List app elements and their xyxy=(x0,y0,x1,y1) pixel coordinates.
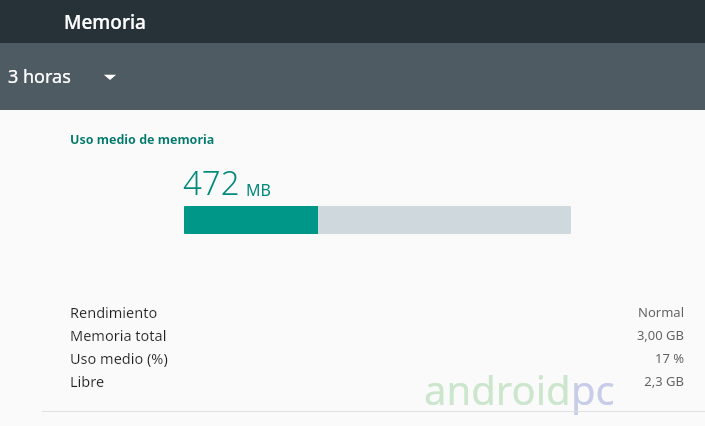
staticText: Memoria total xyxy=(70,325,167,345)
button[interactable]: Memoria total xyxy=(0,323,705,346)
button[interactable]: Rendimiento xyxy=(0,300,705,323)
staticText: Memoria xyxy=(64,9,146,35)
staticText: pc xyxy=(571,362,615,416)
staticText: 472 xyxy=(183,160,240,205)
staticText: 3,00 GB xyxy=(636,326,684,344)
staticText: Uso medio de memoria xyxy=(70,131,215,148)
staticText: Rendimiento xyxy=(70,302,158,322)
staticText: Uso medio (%) xyxy=(70,348,168,368)
button[interactable]: Libre xyxy=(0,369,705,392)
staticText: android xyxy=(424,362,571,416)
button[interactable]: 3 horas xyxy=(8,58,117,95)
staticText: 17 % xyxy=(654,349,684,367)
button[interactable]: Uso medio (%) xyxy=(0,346,705,369)
staticText: 2,3 GB xyxy=(644,372,684,390)
staticText: Normal xyxy=(638,303,684,321)
staticText: Libre xyxy=(70,371,105,391)
staticText: 3 horas xyxy=(8,64,71,89)
staticText: MB xyxy=(246,179,271,201)
other: Expand time range xyxy=(103,72,117,82)
